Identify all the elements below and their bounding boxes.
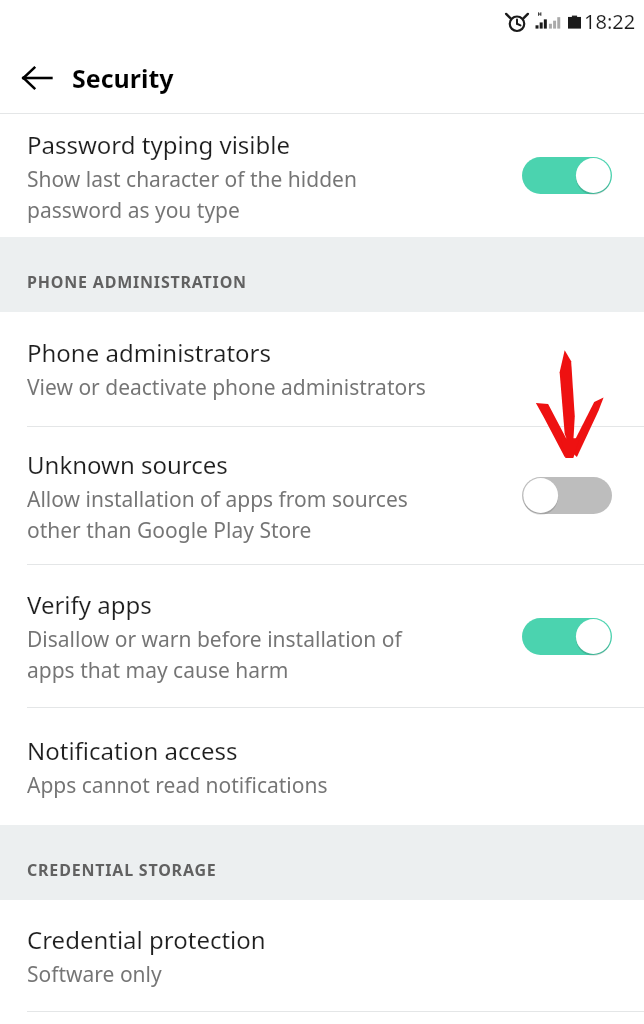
staticText: Credential protection — [27, 923, 266, 956]
staticText: Security — [72, 61, 174, 95]
button[interactable]: Toggle off — [522, 477, 612, 514]
staticText: Disallow or warn before installation of … — [27, 625, 402, 684]
staticText: View or deactivate phone administrators — [27, 373, 426, 402]
staticText: 18:22 — [584, 8, 636, 35]
staticText: Allow installation of apps from sources … — [27, 485, 408, 544]
button[interactable]: Credential protection — [0, 900, 644, 1011]
button[interactable]: Toggle on — [522, 157, 612, 194]
button[interactable]: Password typing visible — [0, 114, 644, 237]
button[interactable]: Back — [14, 55, 60, 101]
button[interactable]: Unknown sources — [0, 427, 644, 564]
staticText: CREDENTIAL STORAGE — [27, 859, 217, 881]
staticText: Apps cannot read notifications — [27, 771, 328, 800]
staticText: Phone administrators — [27, 336, 272, 369]
staticText: Show last character of the hidden passwo… — [27, 165, 357, 224]
staticText: Password typing visible — [27, 128, 291, 161]
button[interactable]: Phone administrators — [0, 312, 644, 426]
button[interactable]: Notification access — [0, 708, 644, 825]
button[interactable]: Toggle on — [522, 618, 612, 655]
button[interactable]: Verify apps — [0, 565, 644, 707]
staticText: Software only — [27, 960, 162, 989]
staticText: Verify apps — [27, 588, 152, 621]
staticText: Notification access — [27, 734, 238, 767]
staticText: PHONE ADMINISTRATION — [27, 271, 247, 293]
staticText: Unknown sources — [27, 448, 228, 481]
